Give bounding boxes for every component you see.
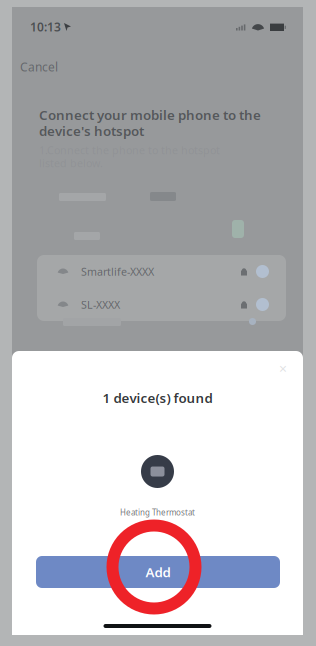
button[interactable]: Close — [274, 360, 292, 378]
staticText: 1 device(s) found — [102, 389, 212, 407]
staticText: SL-XXXX — [81, 297, 120, 312]
staticText: Connect your mobile phone to the — [39, 106, 261, 124]
button[interactable]: SL-XXXX — [37, 288, 286, 321]
staticText: Add — [145, 563, 170, 581]
button[interactable]: Add — [36, 556, 280, 588]
staticText: Cancel — [20, 59, 58, 75]
staticText: 10:13 — [30, 19, 61, 35]
button[interactable]: Smartlife-XXXX — [37, 255, 286, 288]
button[interactable]: Cancel — [16, 55, 62, 79]
staticText: ✕ — [278, 363, 287, 375]
staticText: Heating Thermostat — [120, 507, 195, 518]
staticText: Smartlife-XXXX — [81, 264, 154, 279]
staticText: device's hotspot — [39, 122, 144, 140]
